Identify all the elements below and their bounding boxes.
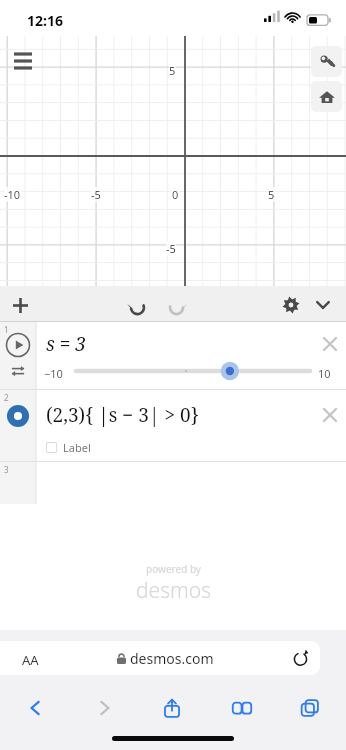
staticText: −10	[44, 366, 63, 381]
button[interactable]: Forward	[86, 690, 122, 726]
staticText: -10	[4, 187, 21, 202]
button[interactable]: Play slider animation	[5, 332, 31, 358]
button[interactable]: Undo	[125, 294, 149, 318]
button[interactable]: Tabs	[292, 690, 328, 726]
button[interactable]: Delete expression	[320, 405, 340, 425]
staticText: desmos	[136, 576, 211, 605]
staticText: AA	[22, 651, 39, 669]
button[interactable]: Bookmarks	[224, 690, 260, 726]
staticText: 12:16	[27, 11, 63, 30]
button[interactable]: Settings	[311, 46, 342, 77]
staticText: 5	[268, 187, 275, 202]
staticText: 10	[318, 366, 331, 381]
staticText: (2,3){ |s − 3| > 0}	[46, 402, 199, 428]
staticText: -5	[166, 241, 176, 256]
button[interactable]: Menu	[10, 50, 36, 72]
button[interactable]: Toggle point visibility	[6, 404, 30, 428]
button[interactable]: Graph settings	[279, 293, 303, 317]
staticText: s = 3	[46, 331, 86, 357]
staticText: 1	[4, 324, 9, 335]
button[interactable]	[74, 360, 312, 382]
staticText: -5	[91, 187, 101, 202]
staticText: 2	[4, 392, 9, 403]
button[interactable]: Loop mode	[7, 363, 29, 379]
staticText: Label	[63, 440, 91, 455]
button[interactable]: Collapse	[311, 293, 335, 317]
staticText: 0	[172, 187, 179, 202]
button[interactable]: Redo	[164, 294, 188, 318]
button[interactable]: Add expression	[8, 293, 32, 317]
button[interactable]: Share	[154, 690, 190, 726]
button[interactable]: Delete expression	[320, 334, 340, 354]
button[interactable]: Label	[46, 438, 91, 456]
staticText: powered by	[146, 562, 201, 576]
staticText: 3	[4, 464, 9, 475]
button[interactable]: Reload	[290, 648, 310, 668]
button[interactable]: AA	[10, 641, 320, 675]
staticText: desmos.com	[130, 649, 214, 668]
button[interactable]: Back	[18, 690, 54, 726]
staticText: 5	[169, 63, 176, 78]
button[interactable]: Home	[311, 81, 342, 112]
